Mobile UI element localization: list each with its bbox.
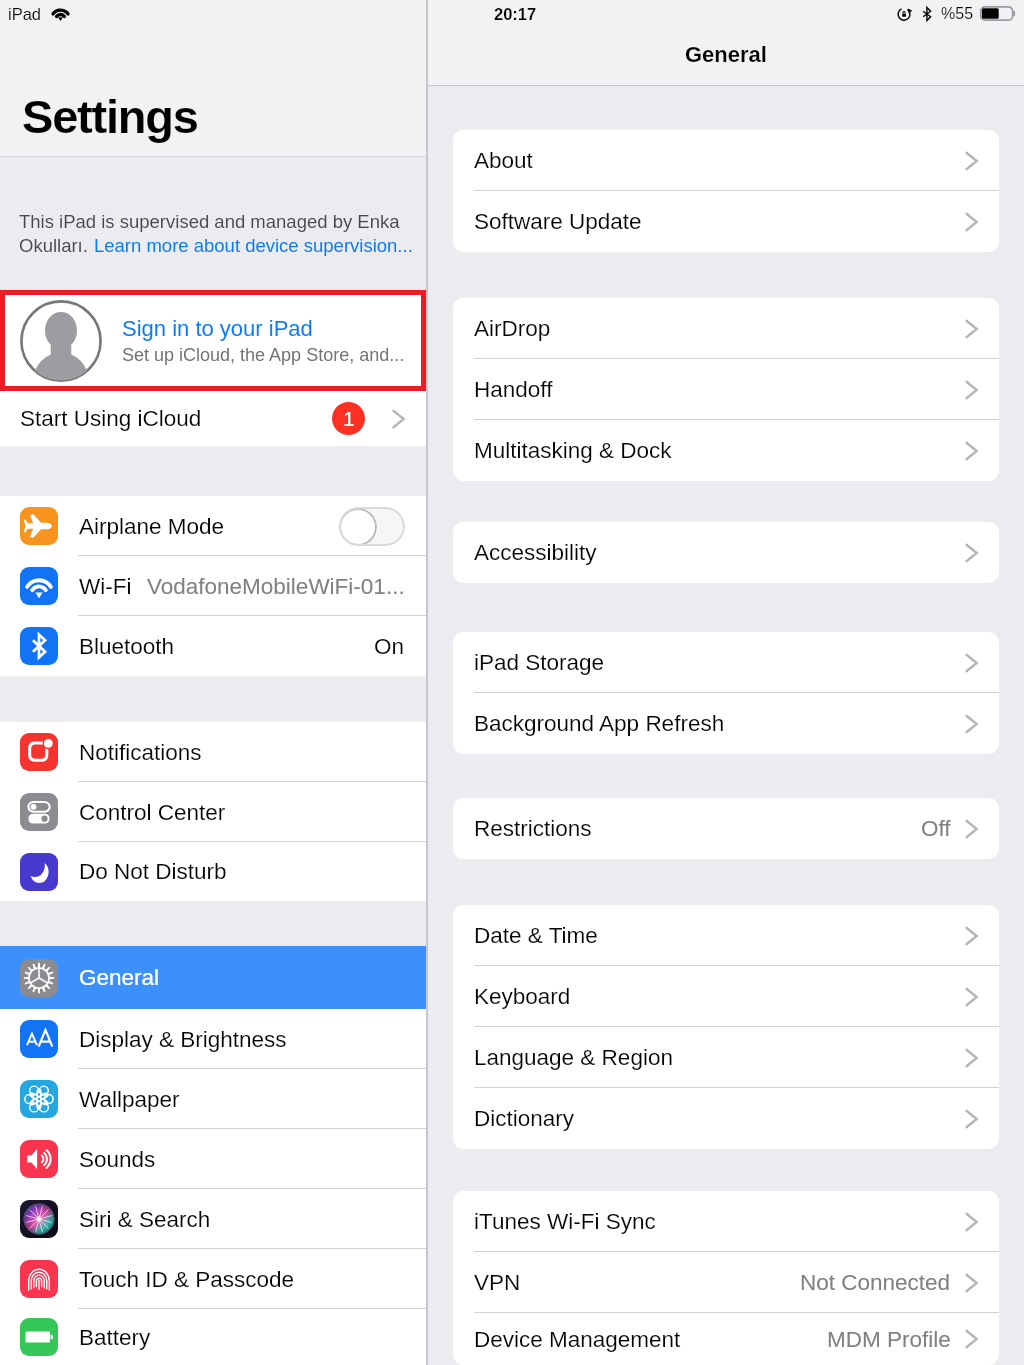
- staticText: 20:17: [494, 5, 537, 23]
- staticText: iTunes Wi-Fi Sync: [474, 1209, 656, 1234]
- button[interactable]: iTunes Wi-Fi Sync: [453, 1191, 999, 1252]
- staticText: Wi-Fi: [79, 574, 132, 599]
- staticText: Do Not Disturb: [79, 859, 227, 884]
- button[interactable]: General: [0, 946, 426, 1009]
- button[interactable]: Airplane Mode toggle: [339, 507, 405, 546]
- staticText: AirDrop: [474, 316, 551, 341]
- staticText: Battery: [79, 1325, 151, 1350]
- staticText: Multitasking & Dock: [474, 438, 672, 463]
- staticText: Software Update: [474, 209, 642, 234]
- staticText: Notifications: [79, 740, 202, 765]
- staticText: Sounds: [79, 1147, 156, 1172]
- button[interactable]: Software Update: [453, 191, 999, 252]
- staticText: This iPad is supervised and managed by E…: [19, 211, 419, 232]
- staticText: Device Management: [474, 1327, 681, 1352]
- button[interactable]: Sounds: [0, 1129, 426, 1189]
- staticText: Airplane Mode: [79, 514, 225, 539]
- staticText: Touch ID & Passcode: [79, 1267, 295, 1292]
- button[interactable]: Battery: [0, 1309, 426, 1365]
- button[interactable]: Learn more about device supervision...: [94, 235, 413, 256]
- staticText: %55: [941, 5, 974, 23]
- staticText: About: [474, 148, 533, 173]
- staticText: Restrictions: [474, 816, 592, 841]
- staticText: Okulları.: [19, 235, 94, 256]
- staticText: Wallpaper: [79, 1087, 180, 1112]
- staticText: Dictionary: [474, 1106, 575, 1131]
- button[interactable]: Siri & Search: [0, 1189, 426, 1249]
- staticText: Bluetooth: [79, 634, 175, 659]
- staticText: Date & Time: [474, 923, 598, 948]
- button[interactable]: Language & Region: [453, 1027, 999, 1088]
- button[interactable]: Keyboard: [453, 966, 999, 1027]
- button[interactable]: Control Center: [0, 782, 426, 842]
- button[interactable]: Notifications: [0, 722, 426, 782]
- staticText: Handoff: [474, 377, 553, 402]
- staticText: Siri & Search: [79, 1207, 211, 1232]
- staticText: Accessibility: [474, 540, 597, 565]
- button[interactable]: VPN: [453, 1252, 999, 1313]
- button[interactable]: Do Not Disturb: [0, 842, 426, 901]
- button[interactable]: Date & Time: [453, 905, 999, 966]
- staticText: Control Center: [79, 800, 226, 825]
- button[interactable]: Sign in to your iPad: [0, 290, 426, 391]
- button[interactable]: Display & Brightness: [0, 1009, 426, 1069]
- staticText: Not Connected: [800, 1270, 951, 1295]
- staticText: iPad Storage: [474, 650, 605, 675]
- button[interactable]: Wallpaper: [0, 1069, 426, 1129]
- staticText: On: [374, 634, 405, 659]
- button[interactable]: Multitasking & Dock: [453, 420, 999, 481]
- button[interactable]: Bluetooth: [0, 616, 426, 676]
- button[interactable]: Background App Refresh: [453, 693, 999, 754]
- staticText: MDM Profile: [827, 1327, 951, 1352]
- staticText: Keyboard: [474, 984, 571, 1009]
- staticText: Set up iCloud, the App Store, and...: [122, 345, 405, 365]
- button[interactable]: Airplane Mode: [0, 496, 426, 556]
- staticText: VodafoneMobileWiFi-01...: [147, 574, 405, 599]
- staticText: Settings: [22, 90, 198, 143]
- button[interactable]: Accessibility: [453, 522, 999, 583]
- button[interactable]: Dictionary: [453, 1088, 999, 1149]
- button[interactable]: AirDrop: [453, 298, 999, 359]
- staticText: General: [79, 965, 160, 990]
- button[interactable]: Wi-Fi: [0, 556, 426, 616]
- staticText: Start Using iCloud: [20, 406, 202, 431]
- staticText: Display & Brightness: [79, 1027, 287, 1052]
- staticText: Sign in to your iPad: [122, 316, 313, 341]
- button[interactable]: Restrictions: [453, 798, 999, 859]
- staticText: 1: [343, 407, 355, 430]
- staticText: Background App Refresh: [474, 711, 725, 736]
- staticText: General: [685, 42, 767, 67]
- button[interactable]: Touch ID & Passcode: [0, 1249, 426, 1309]
- staticText: Off: [921, 816, 951, 841]
- staticText: VPN: [474, 1270, 521, 1295]
- button[interactable]: Device Management: [453, 1313, 999, 1365]
- button[interactable]: About: [453, 130, 999, 191]
- button[interactable]: Start Using iCloud: [0, 391, 426, 446]
- staticText: iPad: [8, 5, 42, 23]
- button[interactable]: iPad Storage: [453, 632, 999, 693]
- button[interactable]: Handoff: [453, 359, 999, 420]
- staticText: Language & Region: [474, 1045, 673, 1070]
